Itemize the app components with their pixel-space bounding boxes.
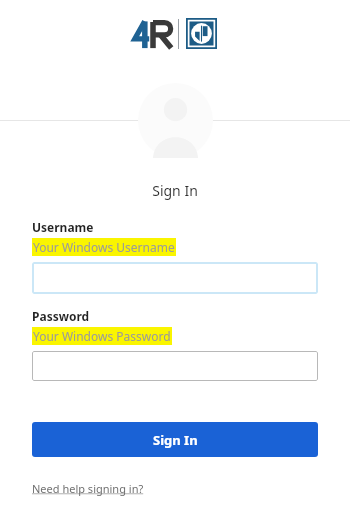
staticText: Sign In: [152, 181, 198, 200]
staticText: Password: [32, 308, 90, 324]
staticText: Username: [32, 219, 94, 235]
button[interactable]: [33, 263, 317, 293]
button[interactable]: Need help signing in?: [32, 481, 144, 496]
staticText: Your Windows Username: [33, 239, 175, 255]
staticText: Need help signing in?: [32, 481, 144, 496]
staticText: Your Windows Password: [33, 328, 171, 344]
staticText: Sign In: [153, 431, 198, 449]
button[interactable]: Sign In: [32, 422, 318, 457]
button[interactable]: [32, 351, 318, 381]
